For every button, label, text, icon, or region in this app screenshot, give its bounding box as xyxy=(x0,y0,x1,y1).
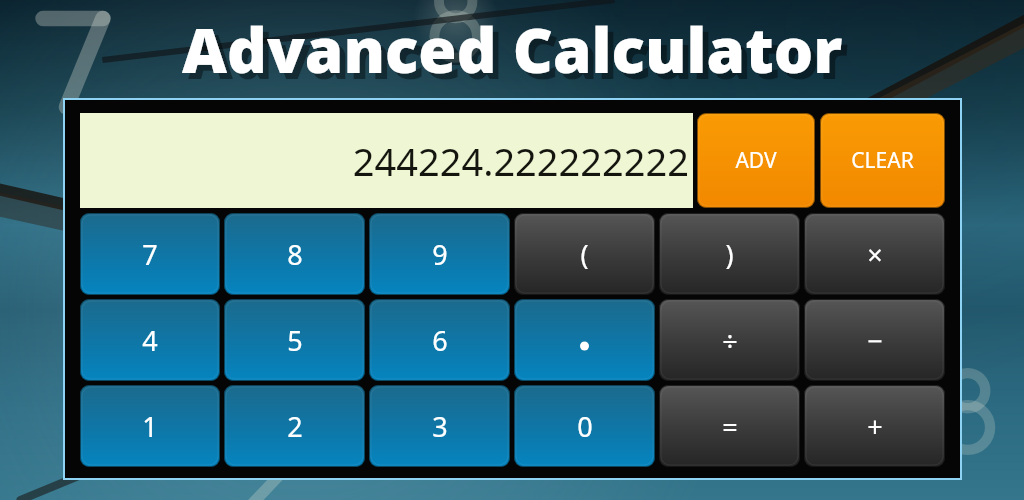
staticText: 7 xyxy=(142,236,158,273)
button[interactable]: ) xyxy=(659,213,800,295)
staticText: 2 xyxy=(287,408,303,445)
staticText: × xyxy=(867,236,883,273)
staticText: = xyxy=(722,408,738,445)
staticText: 244224.222222222 xyxy=(352,135,689,187)
button[interactable]: 4 xyxy=(80,299,220,381)
staticText: ) xyxy=(725,236,734,273)
staticText: 5 xyxy=(287,322,303,359)
staticText: ( xyxy=(580,236,589,273)
button[interactable]: Plus xyxy=(804,385,945,467)
button[interactable]: Equals xyxy=(659,385,800,467)
staticText: CLEAR xyxy=(851,146,914,175)
button[interactable]: CLEAR xyxy=(820,113,945,208)
button[interactable]: 6 xyxy=(369,299,510,381)
staticText: 1 xyxy=(142,408,158,445)
button[interactable]: 5 xyxy=(224,299,365,381)
staticText: 6 xyxy=(432,322,448,359)
staticText: + xyxy=(867,408,883,445)
button[interactable]: 1 xyxy=(80,385,220,467)
button[interactable]: Minus xyxy=(804,299,945,381)
button[interactable]: 2 xyxy=(224,385,365,467)
button[interactable]: 0 xyxy=(514,385,655,467)
staticText: 9 xyxy=(432,236,448,273)
button[interactable]: 3 xyxy=(369,385,510,467)
staticText: Advanced Calculator xyxy=(188,13,849,97)
button[interactable]: ADV xyxy=(697,113,815,208)
button[interactable]: 8 xyxy=(224,213,365,295)
staticText: ÷ xyxy=(722,322,738,359)
button[interactable]: ( xyxy=(514,213,655,295)
staticText: 4 xyxy=(142,322,158,359)
staticText: − xyxy=(867,322,883,359)
staticText: 3 xyxy=(432,408,448,445)
button[interactable]: Multiply xyxy=(804,213,945,295)
staticText: 8 xyxy=(287,236,303,273)
button[interactable]: 9 xyxy=(369,213,510,295)
button[interactable]: 7 xyxy=(80,213,220,295)
button[interactable]: Divide xyxy=(659,299,800,381)
staticText: ADV xyxy=(735,146,777,175)
staticText: 0 xyxy=(577,408,593,445)
staticText: Advanced Calculator xyxy=(182,7,843,91)
button[interactable]: Decimal point xyxy=(514,299,655,381)
